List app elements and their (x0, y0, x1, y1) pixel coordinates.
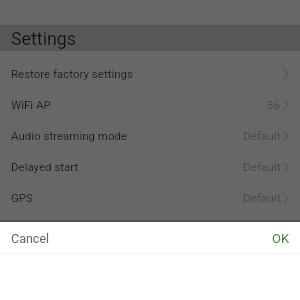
button[interactable]: WiFi AP (0, 89, 300, 120)
staticText: Settings (11, 28, 76, 49)
button[interactable]: Restore factory settings (0, 58, 300, 89)
staticText: Delayed start (11, 160, 79, 173)
staticText: Default (243, 160, 281, 174)
staticText: 36 (267, 98, 281, 112)
staticText: Restore factory settings (11, 67, 133, 80)
staticText: WiFi AP (11, 98, 51, 111)
staticText: GPS (11, 191, 33, 204)
button[interactable]: GPS (0, 182, 300, 213)
staticText: Default (243, 129, 281, 143)
staticText: Cancel (11, 231, 50, 246)
staticText: Default (243, 191, 281, 205)
staticText: Audio streaming mode (11, 129, 128, 142)
button[interactable]: OK (150, 223, 300, 254)
staticText: OK (272, 231, 290, 246)
button[interactable]: Cancel (0, 223, 150, 254)
button[interactable]: Audio streaming mode (0, 120, 300, 151)
button[interactable]: Delayed start (0, 151, 300, 182)
